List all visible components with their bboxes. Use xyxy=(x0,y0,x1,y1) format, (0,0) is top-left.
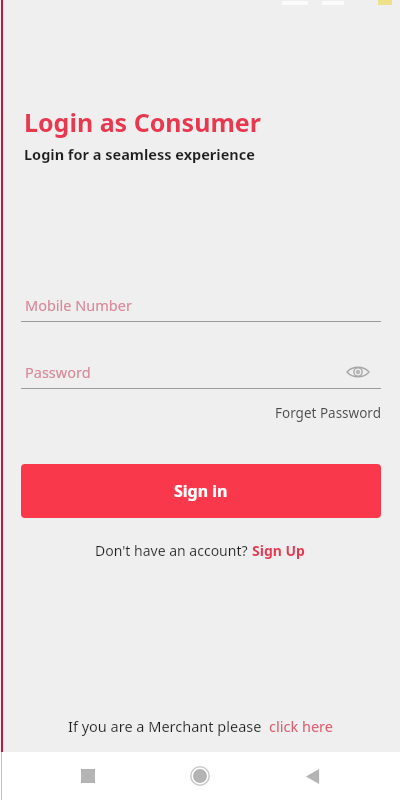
button[interactable]: Password xyxy=(21,359,381,389)
button[interactable]: Sign Up xyxy=(252,541,305,560)
staticText: Password xyxy=(25,362,91,382)
staticText: Sign Up xyxy=(252,541,305,560)
button[interactable]: Back xyxy=(288,752,336,800)
staticText: Login as Consumer xyxy=(24,105,261,139)
button[interactable]: Home xyxy=(176,752,224,800)
button[interactable]: Mobile Number xyxy=(21,292,381,322)
staticText: Don't have an account? xyxy=(95,541,252,560)
button[interactable]: Recent apps xyxy=(64,752,112,800)
staticText: Login for a seamless experience xyxy=(24,144,255,164)
staticText: Sign in xyxy=(174,480,228,502)
staticText: Forget Password xyxy=(275,404,381,422)
staticText: Mobile Number xyxy=(25,295,132,315)
button[interactable]: click here xyxy=(269,716,333,736)
button[interactable]: Sign in xyxy=(21,464,381,518)
staticText: If you are a Merchant please xyxy=(68,716,269,736)
button[interactable]: Show password xyxy=(342,358,374,386)
button[interactable]: Forget Password xyxy=(255,401,381,425)
staticText: click here xyxy=(269,716,333,736)
